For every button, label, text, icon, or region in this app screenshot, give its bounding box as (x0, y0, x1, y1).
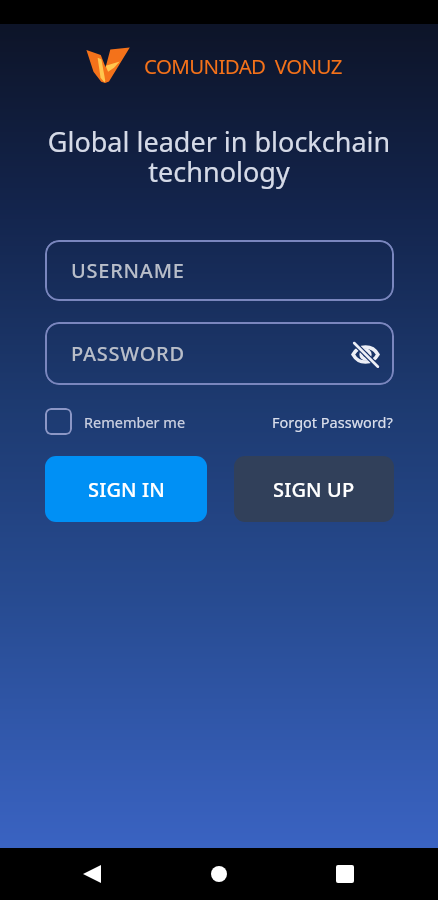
button[interactable]: SIGN UP (234, 456, 394, 522)
button[interactable]: Back (62, 848, 122, 900)
staticText: Global leader in blockchain technology (42, 123, 396, 190)
staticText: PASSWORD (71, 340, 185, 367)
staticText: COMUNIDAD VONUZ (144, 52, 342, 80)
button[interactable]: SIGN IN (45, 456, 207, 522)
button[interactable]: Remember me (45, 408, 186, 435)
staticText: Forgot Password? (272, 412, 393, 432)
staticText: Remember me (84, 412, 186, 432)
staticText: SIGN UP (273, 476, 355, 503)
staticText: USERNAME (71, 257, 185, 284)
button[interactable]: PASSWORD (45, 322, 394, 385)
button[interactable]: Forgot Password? (272, 412, 393, 432)
button[interactable]: Show password (348, 337, 382, 371)
staticText: SIGN IN (88, 476, 165, 503)
button[interactable]: Recent apps (315, 848, 375, 900)
button[interactable]: USERNAME (45, 240, 394, 301)
button[interactable]: Home (189, 848, 249, 900)
